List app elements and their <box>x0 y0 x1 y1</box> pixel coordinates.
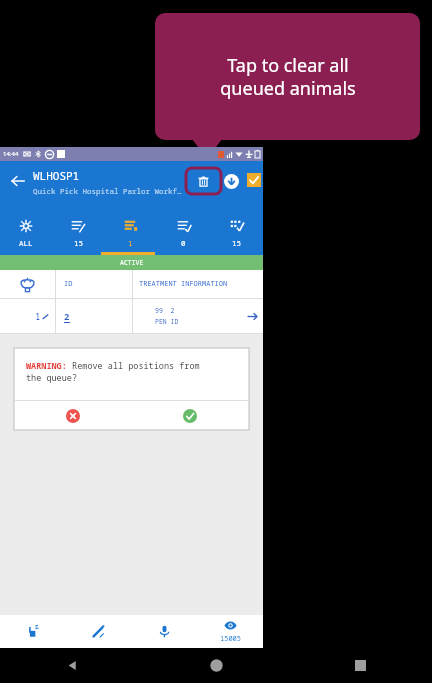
button[interactable]: Select all <box>246 172 262 188</box>
button[interactable]: Download <box>222 172 240 190</box>
staticText: Quick Pick Hospital Parlor Workf… <box>33 186 182 196</box>
staticText: WARNING: <box>26 360 67 372</box>
staticText: WLHOSP1 <box>33 168 80 183</box>
staticText: 1 <box>128 238 133 248</box>
button[interactable]: Home <box>144 648 288 683</box>
staticText: 0 <box>181 238 186 248</box>
button[interactable]: Tap to clear all queued animals <box>155 13 420 140</box>
button[interactable]: Clear queue <box>186 168 221 194</box>
staticText: TREATMENT INFORMATION <box>139 279 228 289</box>
button[interactable]: Wand <box>65 615 131 648</box>
staticText: 2 <box>64 310 70 322</box>
staticText: ACTIVE <box>120 258 144 267</box>
staticText: ID <box>64 279 73 289</box>
button[interactable]: 15 <box>52 213 104 255</box>
button[interactable]: 0 <box>157 213 210 255</box>
button[interactable]: 15 <box>210 213 263 255</box>
button[interactable]: ALL <box>0 213 52 255</box>
staticText: the queue? <box>26 372 78 384</box>
staticText: 15 <box>74 238 83 248</box>
button[interactable]: Recents <box>288 648 432 683</box>
button[interactable]: Confirm <box>131 401 249 430</box>
button[interactable]: 1 <box>0 299 263 333</box>
staticText: 1 <box>35 310 41 322</box>
button[interactable]: 1 <box>104 213 157 255</box>
staticText: ALL <box>19 238 33 248</box>
button[interactable]: View <box>197 615 263 648</box>
button[interactable]: Touch <box>0 615 65 648</box>
button[interactable]: Back <box>0 648 144 683</box>
staticText: PEN ID <box>155 317 179 326</box>
staticText: 15005 <box>220 634 241 644</box>
button[interactable]: Voice <box>131 615 197 648</box>
staticText: Remove all positions from <box>67 360 200 372</box>
staticText: 14:44 <box>3 150 19 158</box>
staticText: 99 2 <box>155 306 175 315</box>
staticText: Tap to clear all queued animals <box>220 53 356 100</box>
button[interactable]: Back <box>6 169 30 193</box>
button[interactable]: Cancel <box>14 401 131 430</box>
staticText: 15 <box>232 238 241 248</box>
